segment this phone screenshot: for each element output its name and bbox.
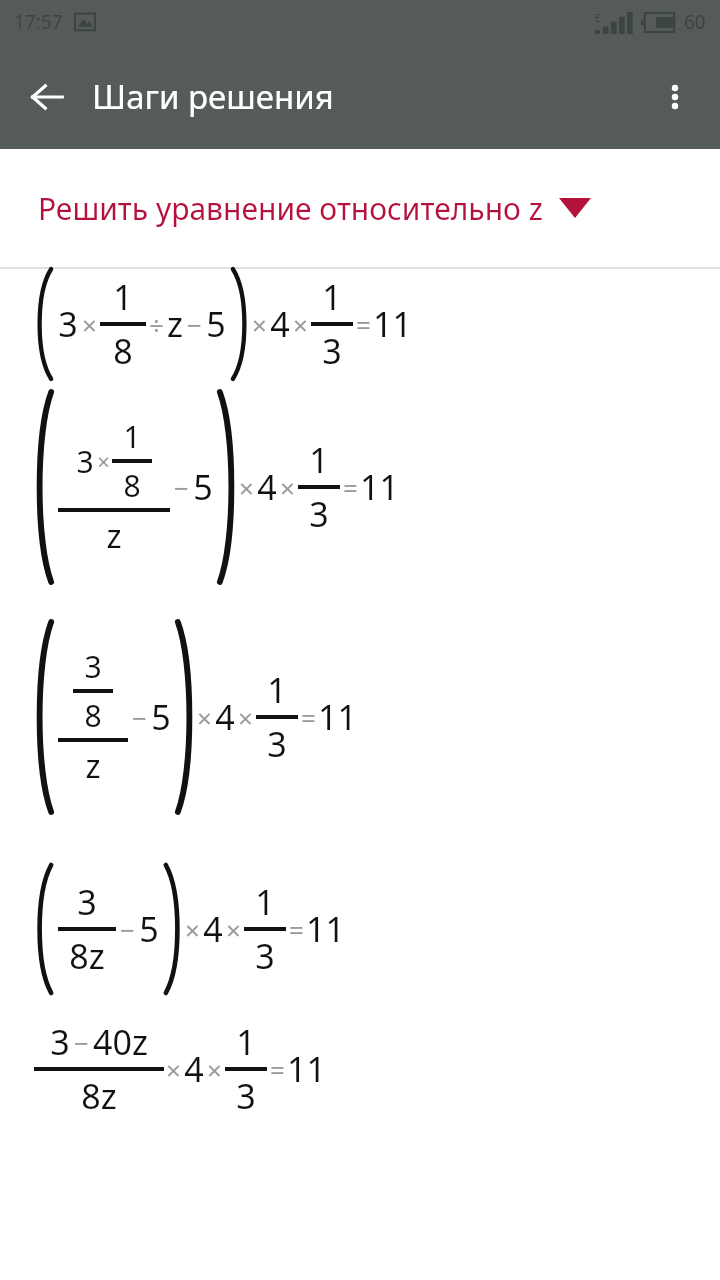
staticText: 8z (81, 1073, 117, 1119)
staticText: 11 (360, 464, 399, 510)
staticText: = (356, 307, 371, 342)
staticText: × (238, 700, 253, 735)
staticText: z (106, 514, 122, 558)
staticText: × (252, 307, 267, 342)
staticText: 3 (84, 646, 102, 687)
staticText: × (166, 1052, 181, 1087)
staticText: 4 (270, 301, 290, 347)
staticText: Шаги решения (92, 74, 334, 119)
staticText: 5 (206, 301, 226, 347)
staticText: = (343, 470, 358, 505)
staticText: 4 (184, 1046, 204, 1092)
staticText: 11 (306, 906, 345, 952)
staticText: × (226, 912, 241, 947)
staticText: 3 (77, 879, 97, 925)
staticText: z (167, 301, 183, 347)
staticText: − (187, 307, 202, 342)
button[interactable]: Решить уравнение относительно z (0, 149, 720, 267)
staticText: 5 (151, 694, 171, 740)
staticText: 3 (309, 491, 329, 537)
staticText: 3 (76, 441, 94, 482)
button[interactable]: Назад (16, 66, 78, 128)
staticText: Решить уравнение относительно z (38, 188, 543, 229)
staticText: = (289, 912, 304, 947)
staticText: 1 (322, 274, 342, 320)
staticText: 1 (236, 1019, 256, 1065)
staticText: 3 (58, 301, 78, 347)
staticText: = (301, 700, 316, 735)
staticText: 3 (236, 1073, 256, 1119)
staticText: 40z (93, 1019, 148, 1065)
staticText: 1 (123, 416, 141, 457)
staticText: 1 (267, 667, 287, 713)
staticText: 1 (309, 437, 329, 483)
staticText: 4 (257, 464, 277, 510)
staticText: × (207, 1052, 222, 1087)
staticText: × (197, 700, 212, 735)
staticText: 11 (373, 301, 412, 347)
staticText: 3 (50, 1019, 70, 1065)
staticText: 8 (84, 695, 102, 736)
staticText: − (120, 912, 135, 947)
staticText: 8z (69, 933, 105, 979)
staticText: − (174, 470, 189, 505)
staticText: × (239, 470, 254, 505)
staticText: 4 (203, 906, 223, 952)
staticText: − (132, 700, 147, 735)
staticText: E (595, 11, 601, 25)
staticText: 5 (193, 464, 213, 510)
staticText: 3 (255, 933, 275, 979)
staticText: 3 (322, 328, 342, 374)
staticText: 17:57 (14, 9, 63, 35)
button[interactable]: Ещё (644, 66, 706, 128)
staticText: × (293, 307, 308, 342)
staticText: = (270, 1052, 285, 1087)
staticText: z (85, 744, 101, 788)
staticText: × (185, 912, 200, 947)
staticText: 3 (267, 721, 287, 767)
staticText: 8 (113, 328, 133, 374)
staticText: 1 (113, 274, 133, 320)
staticText: × (280, 470, 295, 505)
staticText: 11 (318, 694, 357, 740)
staticText: 4 (215, 694, 235, 740)
staticText: × (82, 307, 97, 342)
staticText: − (74, 1025, 89, 1060)
staticText: 1 (255, 879, 275, 925)
staticText: 60 (684, 9, 706, 35)
staticText: 5 (139, 906, 159, 952)
staticText: ÷ (149, 307, 164, 342)
staticText: 11 (287, 1046, 326, 1092)
staticText: × (97, 446, 110, 476)
staticText: 8 (123, 465, 141, 506)
